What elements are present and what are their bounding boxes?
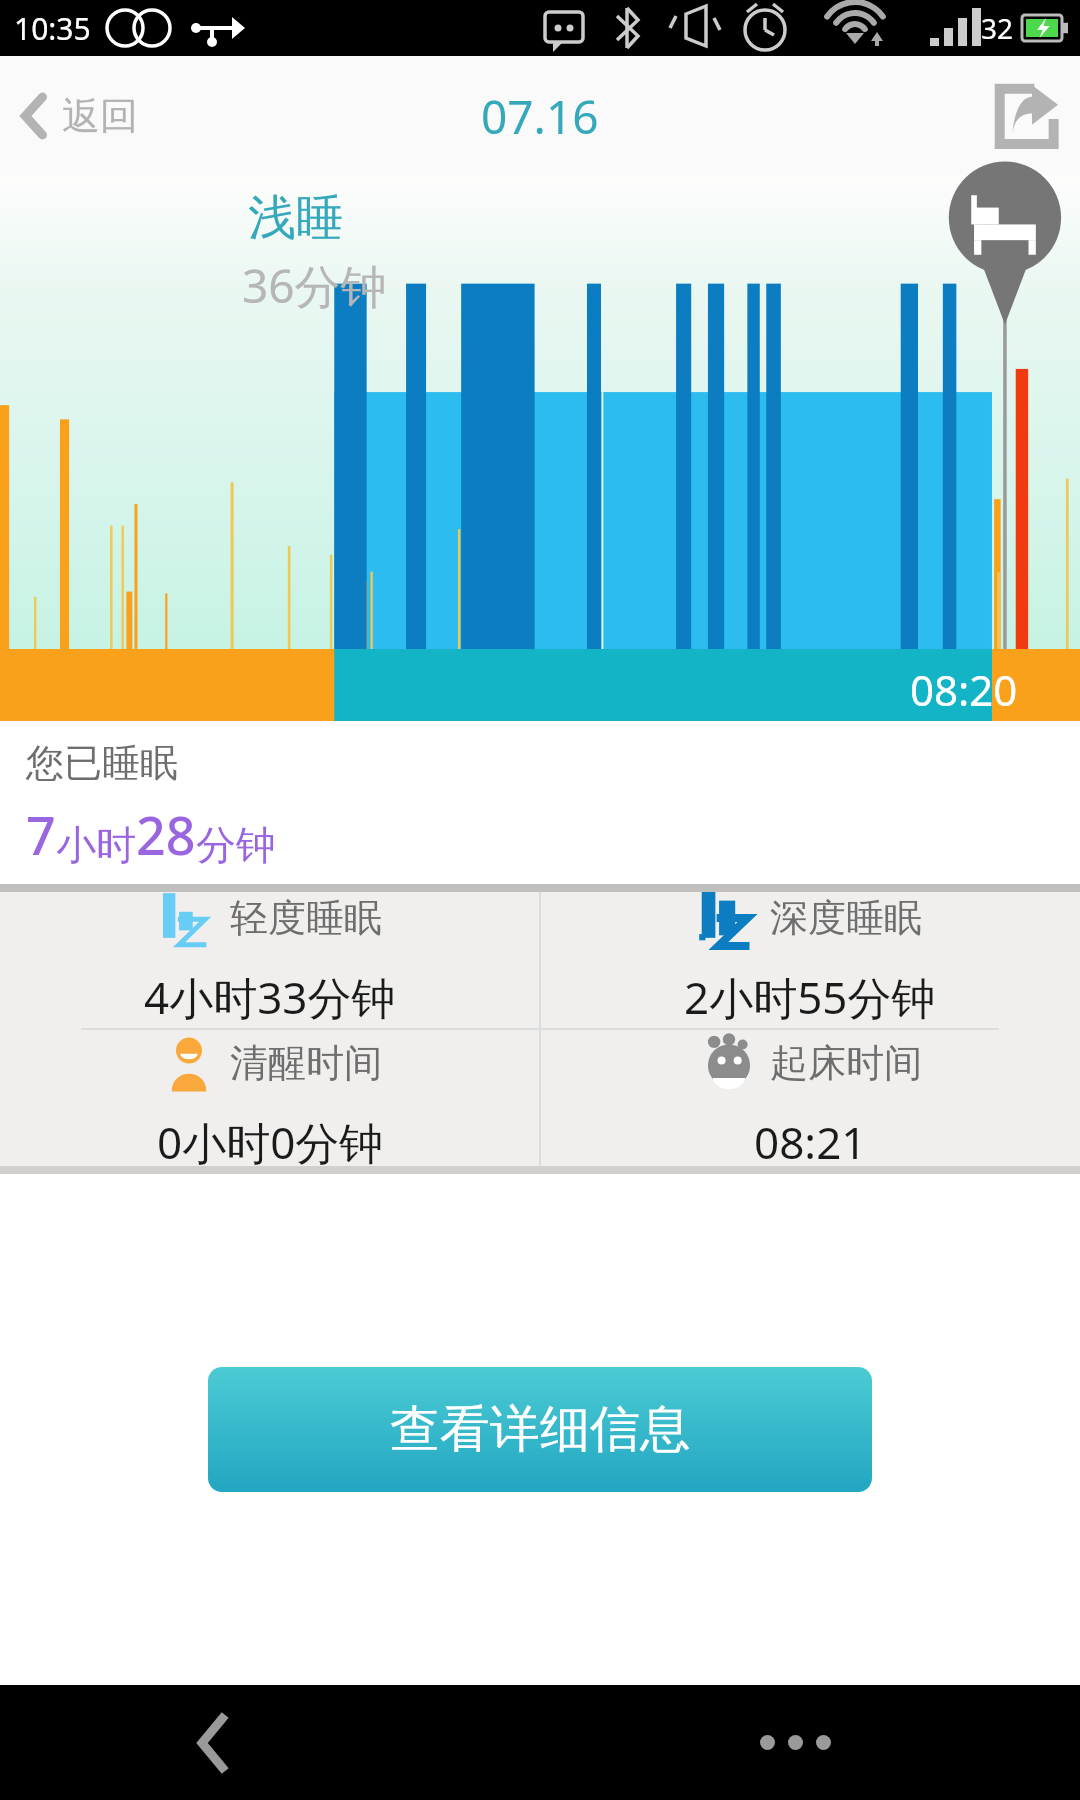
staticText: 08:21 [754, 1112, 867, 1172]
staticText: 起床时间 [770, 1039, 922, 1087]
staticText: 7 [26, 799, 56, 870]
staticText: 36分钟 [242, 254, 387, 317]
button[interactable]: Share [974, 65, 1080, 167]
staticText: 32 [981, 9, 1014, 47]
button[interactable]: 起床时间 [540, 1029, 1080, 1174]
button[interactable]: 清醒时间 [0, 1029, 540, 1174]
staticText: 小时 [56, 820, 136, 870]
button[interactable]: 轻度睡眠 [0, 884, 540, 1029]
button[interactable]: 深度睡眠 [540, 884, 1080, 1029]
button[interactable]: 查看详细信息 [208, 1367, 872, 1492]
staticText: 分钟 [196, 820, 276, 870]
staticText: 0小时0分钟 [157, 1112, 384, 1172]
button[interactable]: 返回 [0, 76, 158, 156]
staticText: 28 [136, 799, 196, 870]
staticText: 浅睡 [248, 188, 344, 248]
button[interactable]: Back [180, 1697, 250, 1789]
staticText: 清醒时间 [230, 1039, 382, 1087]
staticText: 2小时55分钟 [684, 967, 936, 1027]
staticText: 08:20 [910, 661, 1018, 718]
staticText: 07.16 [481, 85, 599, 148]
button[interactable]: More options [742, 1717, 849, 1768]
staticText: 查看详细信息 [390, 1398, 690, 1461]
staticText: 4小时33分钟 [144, 967, 396, 1027]
staticText: 轻度睡眠 [230, 894, 382, 942]
staticText: 深度睡眠 [770, 894, 922, 942]
staticText: 您已睡眠 [26, 739, 178, 787]
staticText: 10:35 [14, 8, 91, 49]
staticText: 返回 [62, 92, 138, 140]
